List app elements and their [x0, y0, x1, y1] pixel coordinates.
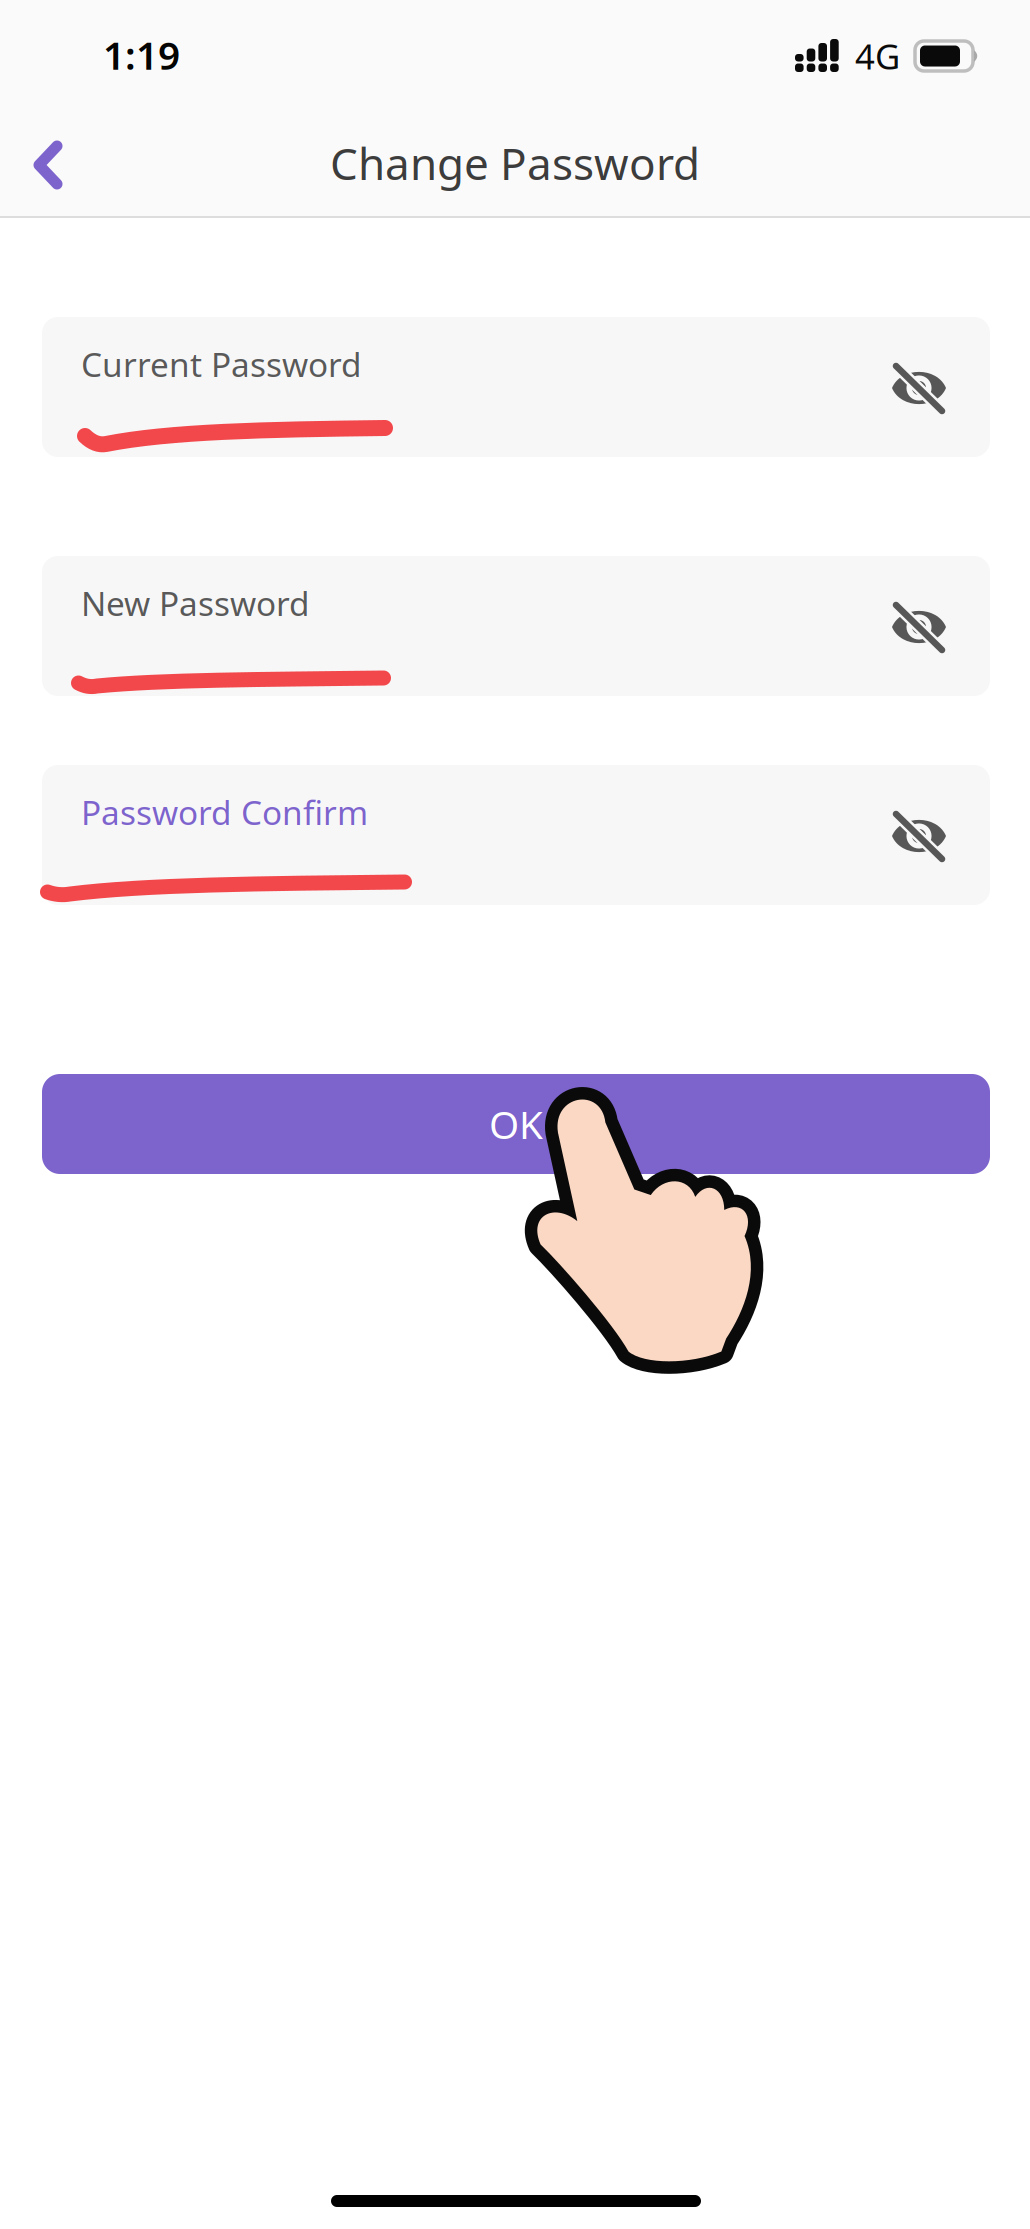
button[interactable]: Back [0, 108, 104, 218]
staticText: 1:19 [103, 29, 180, 80]
staticText: OK [489, 1098, 543, 1150]
staticText: New Password [81, 581, 310, 625]
staticText: 4G [855, 33, 900, 79]
button[interactable]: Show password [864, 333, 974, 443]
button[interactable]: Show password [864, 572, 974, 682]
staticText: Current Password [81, 342, 362, 386]
button[interactable]: OK [42, 1074, 990, 1174]
button[interactable]: Show password [864, 781, 974, 891]
staticText: Change Password [330, 134, 700, 192]
staticText: Password Confirm [81, 790, 368, 834]
